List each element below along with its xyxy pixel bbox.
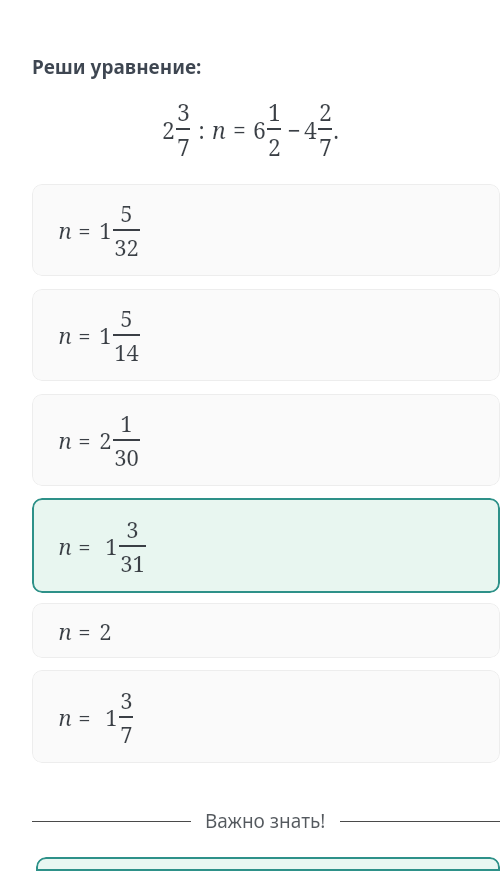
staticText: : [198, 114, 205, 145]
staticText: = [78, 616, 91, 646]
staticText: 1 [268, 96, 281, 127]
staticText: 2 [319, 96, 332, 127]
staticText: 1 [99, 320, 112, 350]
staticText: 32 [114, 232, 139, 262]
staticText: 30 [114, 442, 139, 472]
staticText: 2 [162, 114, 175, 145]
staticText: n [58, 531, 72, 561]
staticText: = [78, 215, 91, 245]
staticText: n [212, 114, 226, 145]
button[interactable]: n [32, 394, 500, 486]
staticText: 5 [120, 198, 133, 228]
staticText: 1 [99, 215, 112, 245]
staticText: = [78, 531, 91, 561]
staticText: = [78, 425, 91, 455]
button[interactable]: n [32, 498, 500, 593]
staticText: 3 [126, 514, 139, 544]
button[interactable]: n [32, 603, 500, 658]
staticText: n [58, 425, 72, 455]
staticText: − [287, 114, 301, 145]
staticText: 5 [120, 303, 133, 333]
staticText: 7 [319, 131, 332, 162]
button[interactable]: n [32, 289, 500, 381]
staticText: 4 [304, 114, 317, 145]
staticText: Важно знать! [205, 808, 326, 834]
staticText: 3 [177, 96, 190, 127]
staticText: 2 [99, 616, 112, 646]
button[interactable]: n [32, 670, 500, 763]
staticText: n [58, 215, 72, 245]
staticText: 3 [120, 685, 133, 715]
staticText: 1 [105, 531, 118, 561]
staticText: 2 [268, 131, 281, 162]
staticText: n [58, 702, 72, 732]
staticText: 31 [120, 548, 145, 578]
button[interactable]: Важно знать [36, 857, 500, 871]
staticText: = [233, 114, 246, 145]
staticText: 14 [114, 337, 139, 367]
staticText: n [58, 320, 72, 350]
staticText: 6 [253, 114, 266, 145]
staticText: 2 [99, 425, 112, 455]
staticText: = [78, 320, 91, 350]
staticText: n [58, 616, 72, 646]
staticText: 7 [177, 131, 190, 162]
staticText: = [78, 702, 91, 732]
button[interactable]: n [32, 184, 500, 276]
staticText: 7 [120, 719, 133, 749]
staticText: Реши уравнение: [32, 54, 202, 80]
staticText: 1 [105, 702, 118, 732]
staticText: . [333, 114, 339, 145]
staticText: 1 [120, 408, 133, 438]
